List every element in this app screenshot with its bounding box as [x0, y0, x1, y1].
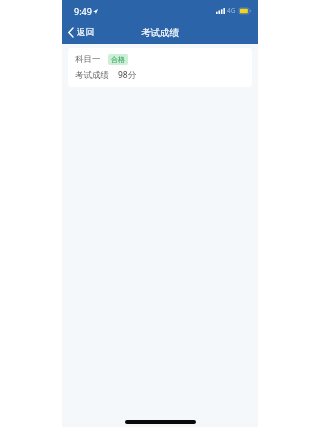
- button[interactable]: 科目一: [68, 48, 252, 87]
- staticText: 9:49: [74, 5, 92, 17]
- staticText: 科目一: [75, 54, 101, 65]
- staticText: 考试成绩: [141, 27, 179, 39]
- staticText: 返回: [77, 27, 94, 38]
- staticText: 合格: [111, 55, 125, 64]
- staticText: 98分: [118, 69, 137, 81]
- staticText: 4G: [227, 6, 236, 15]
- staticText: 考试成绩: [75, 70, 109, 81]
- button[interactable]: 返回 Back: [62, 23, 102, 42]
